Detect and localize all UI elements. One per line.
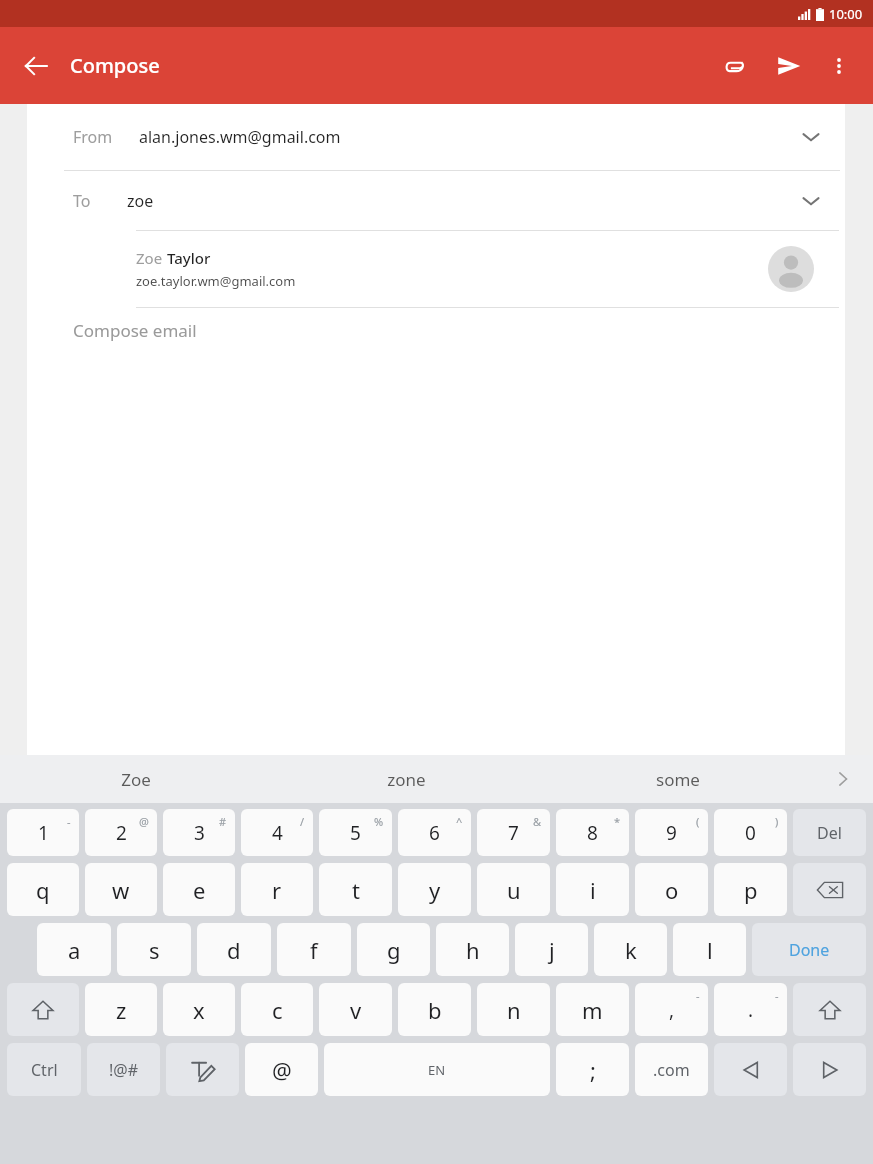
button[interactable]: e	[163, 863, 235, 916]
button[interactable]: f	[277, 923, 351, 976]
button[interactable]: d	[197, 923, 271, 976]
button[interactable]: w	[85, 863, 157, 916]
staticText: zone	[387, 768, 426, 791]
button[interactable]: k	[594, 923, 667, 976]
staticText: e	[193, 875, 206, 905]
button[interactable]: @	[245, 1043, 318, 1096]
button[interactable]: Attach file	[711, 42, 759, 90]
staticText: )	[775, 814, 779, 829]
button[interactable]: r	[241, 863, 313, 916]
button[interactable]: 6	[398, 809, 471, 856]
staticText: c	[272, 995, 283, 1025]
staticText: &	[533, 814, 542, 829]
staticText: @	[139, 814, 149, 829]
staticText: 8	[587, 820, 598, 846]
staticText: -	[67, 814, 71, 829]
button[interactable]: Back	[12, 42, 60, 90]
button[interactable]: g	[357, 923, 430, 976]
button[interactable]: 3	[163, 809, 235, 856]
button[interactable]: .com	[635, 1043, 708, 1096]
button[interactable]: Done	[752, 923, 866, 976]
button[interactable]: 5	[319, 809, 392, 856]
button[interactable]: u	[477, 863, 550, 916]
button[interactable]: To	[27, 171, 845, 230]
button[interactable]: h	[436, 923, 509, 976]
button[interactable]: !@#	[87, 1043, 160, 1096]
button[interactable]: Zoe	[0, 755, 271, 803]
button[interactable]: y	[398, 863, 471, 916]
staticText: 3	[194, 820, 205, 846]
button[interactable]: x	[163, 983, 235, 1036]
button[interactable]: 0	[714, 809, 787, 856]
staticText: a	[68, 935, 81, 965]
staticText: Compose	[70, 52, 160, 79]
button[interactable]: s	[117, 923, 191, 976]
button[interactable]: 9	[635, 809, 708, 856]
button[interactable]: b	[398, 983, 471, 1036]
staticText: Taylor	[167, 248, 211, 268]
staticText: alan.jones.wm@gmail.com	[139, 126, 341, 148]
staticText: zoe.taylor.wm@gmail.com	[136, 272, 296, 290]
staticText: ;	[590, 1055, 596, 1085]
button[interactable]: Shift	[7, 983, 79, 1036]
staticText: Done	[789, 939, 830, 961]
button[interactable]: j	[515, 923, 588, 976]
staticText: .	[748, 997, 754, 1023]
staticText: w	[112, 875, 130, 905]
staticText: Compose email	[73, 319, 197, 342]
button[interactable]: ;	[556, 1043, 629, 1096]
staticText: -	[696, 988, 700, 1003]
staticText: @	[272, 1055, 292, 1085]
button[interactable]: Send	[765, 42, 813, 90]
other: Expand from	[791, 117, 831, 157]
staticText: /	[300, 814, 305, 829]
staticText: v	[350, 995, 362, 1025]
button[interactable]: From	[27, 104, 845, 170]
button[interactable]: n	[477, 983, 550, 1036]
button[interactable]: Ctrl	[7, 1043, 81, 1096]
button[interactable]: ,	[635, 983, 708, 1036]
button[interactable]: a	[37, 923, 111, 976]
button[interactable]: c	[241, 983, 313, 1036]
button[interactable]: p	[714, 863, 787, 916]
button[interactable]: More suggestions	[813, 755, 873, 803]
button[interactable]: 2	[85, 809, 157, 856]
staticText: zoe	[127, 190, 154, 212]
staticText: 1	[38, 820, 49, 846]
button[interactable]: some	[542, 755, 813, 803]
button[interactable]: 8	[556, 809, 629, 856]
staticText: *	[614, 814, 621, 829]
staticText: To	[73, 190, 91, 212]
button[interactable]: o	[635, 863, 708, 916]
button[interactable]: .	[714, 983, 787, 1036]
button[interactable]: Del	[793, 809, 866, 856]
button[interactable]: Shift	[793, 983, 866, 1036]
button[interactable]: More options	[815, 42, 863, 90]
button[interactable]: t	[319, 863, 392, 916]
button[interactable]: q	[7, 863, 79, 916]
staticText: Ctrl	[31, 1059, 58, 1081]
button[interactable]: zone	[271, 755, 542, 803]
button[interactable]: z	[85, 983, 157, 1036]
button[interactable]: v	[319, 983, 392, 1036]
button[interactable]: 4	[241, 809, 313, 856]
button[interactable]: Handwriting	[166, 1043, 239, 1096]
button[interactable]: Zoe	[27, 231, 845, 307]
button[interactable]: EN	[324, 1043, 550, 1096]
button[interactable]: Compose email	[27, 308, 845, 352]
button[interactable]: Cursor right	[793, 1043, 866, 1096]
button[interactable]: 1	[7, 809, 79, 856]
button[interactable]: m	[556, 983, 629, 1036]
staticText: h	[466, 935, 480, 965]
staticText: l	[707, 935, 713, 965]
other: Expand recipients	[791, 181, 831, 221]
staticText: !@#	[109, 1059, 139, 1081]
staticText: 0	[745, 820, 756, 846]
button[interactable]: Cursor left	[714, 1043, 787, 1096]
button[interactable]: l	[673, 923, 746, 976]
staticText: z	[116, 995, 127, 1025]
staticText: 7	[508, 820, 519, 846]
button[interactable]: Backspace	[793, 863, 866, 916]
button[interactable]: i	[556, 863, 629, 916]
button[interactable]: 7	[477, 809, 550, 856]
